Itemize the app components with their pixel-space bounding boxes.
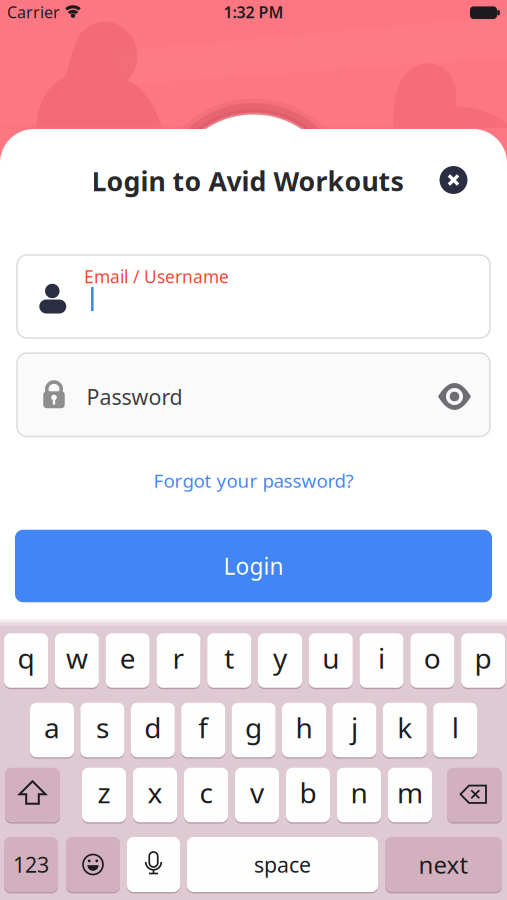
button[interactable]: s xyxy=(80,703,124,757)
staticText: w xyxy=(66,639,88,677)
button[interactable]: v xyxy=(235,768,279,822)
staticText: 123 xyxy=(13,850,49,879)
button[interactable]: Dictate xyxy=(127,837,180,892)
staticText: r xyxy=(172,639,184,677)
staticText: Carrier xyxy=(7,1,60,23)
staticText: f xyxy=(198,709,208,746)
button[interactable]: w xyxy=(55,633,99,688)
button[interactable]: Close xyxy=(439,166,467,194)
staticText: Login to Avid Workouts xyxy=(91,163,403,199)
button[interactable]: g xyxy=(232,703,276,757)
staticText: t xyxy=(224,639,234,677)
staticText: o xyxy=(424,639,441,677)
button[interactable]: i xyxy=(360,633,404,688)
button[interactable]: Password xyxy=(17,353,490,437)
button[interactable]: Shift xyxy=(5,768,60,822)
staticText: a xyxy=(44,709,60,746)
staticText: 1:32 PM xyxy=(223,1,283,23)
staticText: i xyxy=(378,639,385,677)
button[interactable]: 123 xyxy=(4,837,58,892)
button[interactable]: r xyxy=(156,633,200,688)
staticText: m xyxy=(397,774,423,811)
button[interactable]: q xyxy=(4,633,48,688)
staticText: h xyxy=(295,709,312,746)
button[interactable]: Emoji xyxy=(66,837,120,892)
button[interactable]: Delete xyxy=(447,768,502,822)
button[interactable]: Login xyxy=(15,530,492,602)
button[interactable]: d xyxy=(131,703,175,757)
button[interactable]: y xyxy=(258,633,302,688)
staticText: Login xyxy=(223,551,283,581)
staticText: n xyxy=(350,774,367,811)
button[interactable]: e xyxy=(106,633,150,688)
staticText: j xyxy=(351,709,358,746)
button[interactable]: h xyxy=(282,703,326,757)
button[interactable]: n xyxy=(337,768,381,822)
staticText: b xyxy=(299,774,316,811)
staticText: y xyxy=(273,639,287,677)
staticText: next xyxy=(418,849,468,880)
staticText: k xyxy=(397,709,412,746)
staticText: l xyxy=(452,709,459,746)
staticText: d xyxy=(144,709,161,746)
button[interactable]: Show password xyxy=(432,374,476,418)
staticText: e xyxy=(120,639,136,677)
staticText: Email / Username xyxy=(84,265,229,288)
staticText: Password xyxy=(86,383,182,411)
staticText: u xyxy=(322,639,339,677)
button[interactable]: space xyxy=(187,837,378,892)
staticText: g xyxy=(245,709,262,746)
button[interactable]: next xyxy=(385,837,502,892)
button[interactable]: o xyxy=(410,633,454,688)
staticText: q xyxy=(18,639,35,677)
staticText: Forgot your password? xyxy=(153,468,353,493)
staticText: v xyxy=(250,774,264,811)
button[interactable]: f xyxy=(181,703,225,757)
button[interactable]: k xyxy=(383,703,427,757)
staticText: s xyxy=(96,709,109,746)
staticText: z xyxy=(97,774,110,811)
button[interactable]: x xyxy=(133,768,177,822)
button[interactable]: c xyxy=(184,768,228,822)
staticText: space xyxy=(254,850,311,879)
button[interactable]: z xyxy=(82,768,126,822)
button[interactable]: m xyxy=(388,768,432,822)
button[interactable]: j xyxy=(332,703,376,757)
button[interactable]: a xyxy=(30,703,74,757)
button[interactable]: Email / Username xyxy=(17,255,490,338)
button[interactable]: Forgot your password? xyxy=(153,468,353,493)
button[interactable]: l xyxy=(433,703,477,757)
staticText: c xyxy=(199,774,212,811)
button[interactable]: u xyxy=(309,633,353,688)
button[interactable]: t xyxy=(207,633,251,688)
staticText: p xyxy=(475,639,492,677)
staticText: x xyxy=(147,774,162,811)
button[interactable]: p xyxy=(461,633,505,688)
button[interactable]: b xyxy=(286,768,330,822)
